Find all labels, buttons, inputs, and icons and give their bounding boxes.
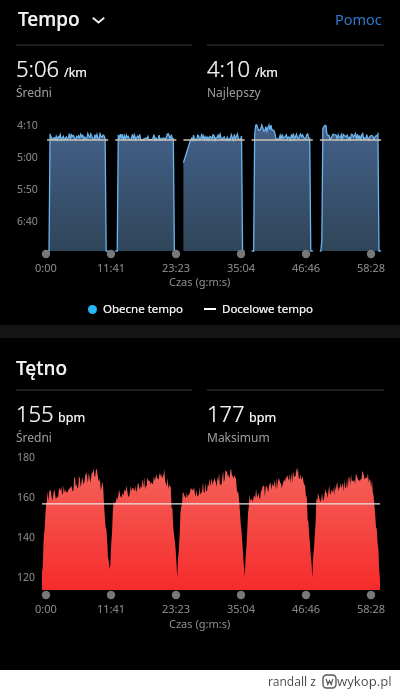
staticText: Tętno — [16, 355, 68, 381]
staticText: Pomoc — [335, 9, 382, 29]
staticText: Najlepszy — [207, 84, 261, 100]
staticText: 177 — [207, 398, 245, 428]
staticText: Czas (g:m:s) — [169, 274, 231, 289]
staticText: 11:41 — [97, 601, 126, 615]
staticText: 23:23 — [162, 601, 191, 615]
staticText: 5:50 — [17, 182, 38, 196]
staticText: 0:00 — [35, 260, 57, 274]
staticText: Średni — [16, 84, 52, 100]
staticText: /km — [255, 64, 279, 81]
staticText: 5:06 — [16, 53, 60, 83]
staticText: Maksimum — [207, 429, 270, 445]
staticText: Średni — [16, 429, 52, 445]
staticText: 5:00 — [17, 150, 38, 164]
button[interactable]: Tempo — [16, 2, 108, 36]
staticText: 46:46 — [292, 260, 321, 274]
staticText: 160 — [17, 490, 36, 504]
staticText: 11:41 — [97, 260, 126, 274]
staticText: 0:00 — [35, 601, 57, 615]
staticText: 180 — [17, 450, 36, 464]
staticText: 155 — [16, 398, 54, 428]
staticText: bpm — [58, 409, 86, 426]
staticText: 23:23 — [162, 260, 191, 274]
staticText: 58:28 — [357, 260, 386, 274]
staticText: 58:28 — [357, 601, 386, 615]
button[interactable]: Pomoc — [329, 3, 388, 35]
staticText: Czas (g:m:s) — [169, 616, 231, 631]
staticText: 35:04 — [227, 601, 256, 615]
staticText: 46:46 — [292, 601, 321, 615]
staticText: bpm — [249, 409, 277, 426]
other: Change metric — [91, 12, 106, 27]
staticText: 4:10 — [17, 118, 38, 132]
staticText: randall z — [268, 673, 316, 689]
staticText: /km — [64, 64, 88, 81]
staticText: 6:40 — [17, 214, 38, 228]
staticText: 35:04 — [227, 260, 256, 274]
staticText: Obecne tempo — [103, 301, 184, 317]
staticText: 120 — [17, 570, 36, 584]
staticText: 140 — [17, 530, 36, 544]
staticText: Tempo — [18, 6, 80, 32]
staticText: Docelowe tempo — [222, 301, 313, 317]
staticText: wykop.pl — [337, 672, 392, 690]
staticText: 4:10 — [207, 53, 251, 83]
